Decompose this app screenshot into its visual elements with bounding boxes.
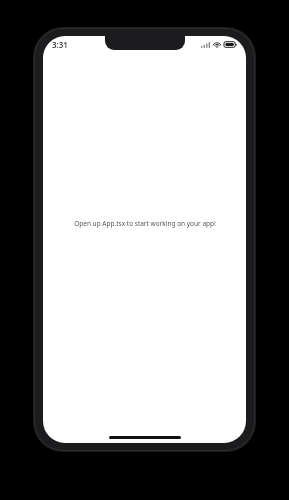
staticText: Open up App.tsx to start working on your… (74, 219, 216, 228)
other: Home indicator (109, 436, 181, 439)
button[interactable]: Open up App.tsx to start working on your… (72, 217, 218, 230)
staticText: 3:31 (52, 39, 68, 50)
